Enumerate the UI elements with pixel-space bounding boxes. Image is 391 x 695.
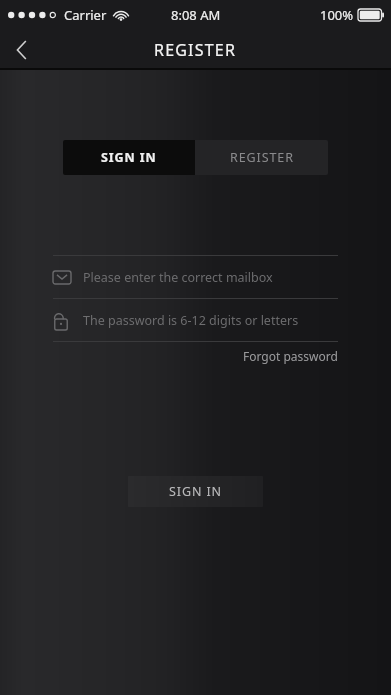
staticText: Carrier	[64, 6, 107, 24]
staticText: REGISTER	[154, 39, 237, 61]
staticText: The password is 6-12 digits or letters	[83, 312, 299, 329]
staticText: Please enter the correct mailbox	[83, 269, 273, 286]
button[interactable]: SIGN IN	[63, 140, 195, 175]
staticText: SIGN IN	[101, 149, 157, 166]
staticText: 100%	[320, 6, 354, 24]
button[interactable]: Please enter the correct mailbox	[53, 256, 338, 298]
staticText: SIGN IN	[169, 483, 222, 500]
staticText: 8:08 AM	[171, 6, 221, 24]
button[interactable]: Back	[0, 30, 44, 70]
button[interactable]: REGISTER	[195, 140, 328, 175]
staticText: REGISTER	[230, 149, 294, 166]
button[interactable]: SIGN IN	[128, 476, 263, 507]
button[interactable]: Forgot password	[243, 348, 338, 364]
button[interactable]: The password is 6-12 digits or letters	[53, 299, 338, 341]
